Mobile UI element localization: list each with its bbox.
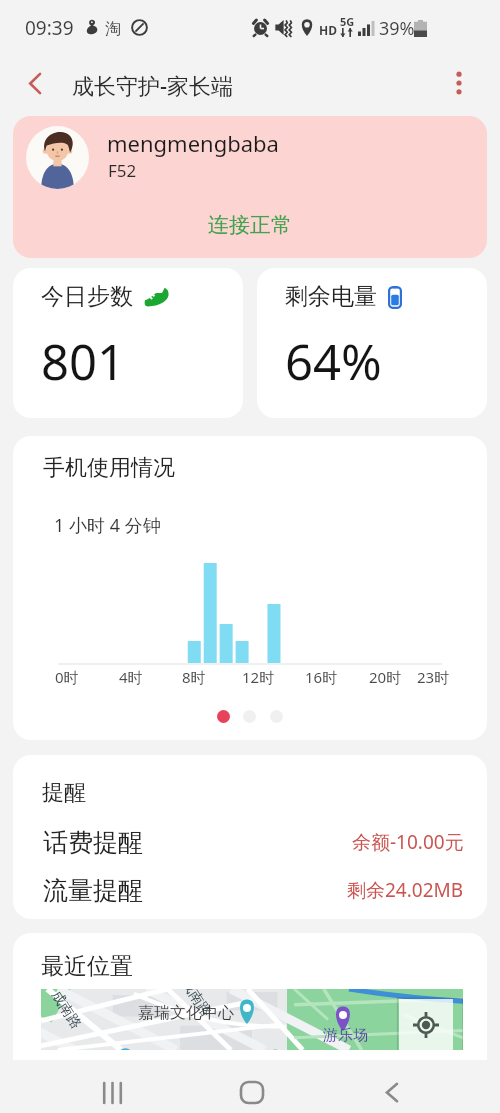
button[interactable]: 剩余电量 <box>257 268 487 418</box>
staticText: 64% <box>285 328 382 395</box>
button[interactable]: 话费提醒 <box>13 817 487 867</box>
staticText: 淘 <box>105 19 121 39</box>
staticText: 余额-10.00元 <box>352 829 464 855</box>
staticText: F52 <box>108 159 137 182</box>
staticText: 4时 <box>119 667 143 687</box>
staticText: 1 小时 4 分钟 <box>54 513 161 538</box>
staticText: 流量提醒 <box>43 875 143 906</box>
staticText: 0时 <box>55 667 79 687</box>
staticText: 手机使用情况 <box>43 454 175 482</box>
staticText: HD <box>319 22 337 38</box>
staticText: 最近位置 <box>41 952 133 981</box>
staticText: 话费提醒 <box>43 827 143 858</box>
button[interactable]: Recent apps <box>86 1066 139 1113</box>
staticText: 剩余电量 <box>285 282 377 311</box>
staticText: 成南路 <box>47 989 85 1032</box>
button[interactable]: mengmengbaba <box>13 116 487 258</box>
staticText: mengmengbaba <box>107 128 279 158</box>
button[interactable]: 成南路 <box>41 989 463 1050</box>
staticText: 成长守护-家长端 <box>72 70 234 100</box>
staticText: 09:39 <box>25 15 74 41</box>
button[interactable]: Home <box>225 1066 278 1113</box>
staticText: 12时 <box>242 667 275 687</box>
button[interactable]: Back <box>365 1066 418 1113</box>
staticText: 801 <box>41 328 126 395</box>
staticText: 成南路 <box>177 989 215 1020</box>
staticText: 嘉瑞文化中心 <box>138 1003 234 1023</box>
button[interactable]: Locate me <box>399 999 453 1050</box>
staticText: 20时 <box>369 667 402 687</box>
button[interactable]: More options <box>438 62 480 104</box>
button[interactable]: 流量提醒 <box>13 865 487 915</box>
staticText: 5G <box>340 14 355 29</box>
staticText: 连接正常 <box>208 212 292 238</box>
staticText: 16时 <box>305 667 338 687</box>
button[interactable]: 今日步数 <box>13 268 243 418</box>
staticText: 今日步数 <box>41 282 133 311</box>
staticText: 39% <box>379 16 415 41</box>
staticText: 提醒 <box>42 779 86 807</box>
staticText: 23时 <box>417 667 450 687</box>
button[interactable]: Back <box>14 62 56 104</box>
staticText: 8时 <box>182 667 206 687</box>
staticText: 剩余24.02MB <box>347 877 464 903</box>
staticText: 游乐场 <box>323 1026 368 1045</box>
